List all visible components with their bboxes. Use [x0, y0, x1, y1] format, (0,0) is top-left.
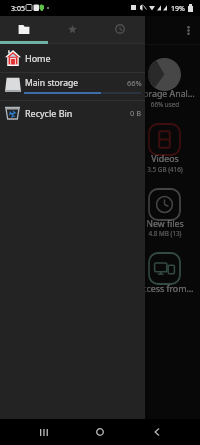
- staticText: New files: [133, 218, 197, 230]
- staticText: 4.8 MB (13): [133, 229, 197, 238]
- button[interactable]: More options: [178, 16, 199, 44]
- button[interactable]: Recycle Bin: [0, 101, 145, 128]
- staticText: 3:05: [11, 4, 25, 14]
- button[interactable]: Main storage: [0, 73, 145, 100]
- staticText: 0 B: [130, 108, 142, 118]
- button[interactable]: Files: [0, 16, 48, 44]
- staticText: Storage Anal…: [133, 88, 197, 100]
- staticText: Access from…: [133, 283, 197, 295]
- button[interactable]: Recent: [96, 16, 144, 44]
- staticText: 66%: [127, 78, 142, 88]
- button[interactable]: Home: [90, 422, 110, 442]
- button[interactable]: Back: [147, 422, 167, 442]
- staticText: Videos: [133, 153, 197, 165]
- staticText: 66% used: [133, 100, 197, 109]
- staticText: 19%: [171, 4, 185, 14]
- staticText: 3.5 GB (416): [133, 165, 197, 174]
- button[interactable]: [132, 182, 197, 240]
- button[interactable]: [132, 53, 197, 111]
- button[interactable]: [132, 247, 197, 305]
- button[interactable]: Home: [0, 44, 145, 72]
- button[interactable]: Bookmarks: [48, 16, 96, 44]
- button[interactable]: Recent apps: [34, 422, 54, 442]
- button[interactable]: [132, 117, 197, 175]
- staticText: Home: [25, 52, 51, 64]
- staticText: Main storage: [25, 77, 79, 89]
- staticText: Recycle Bin: [25, 107, 73, 119]
